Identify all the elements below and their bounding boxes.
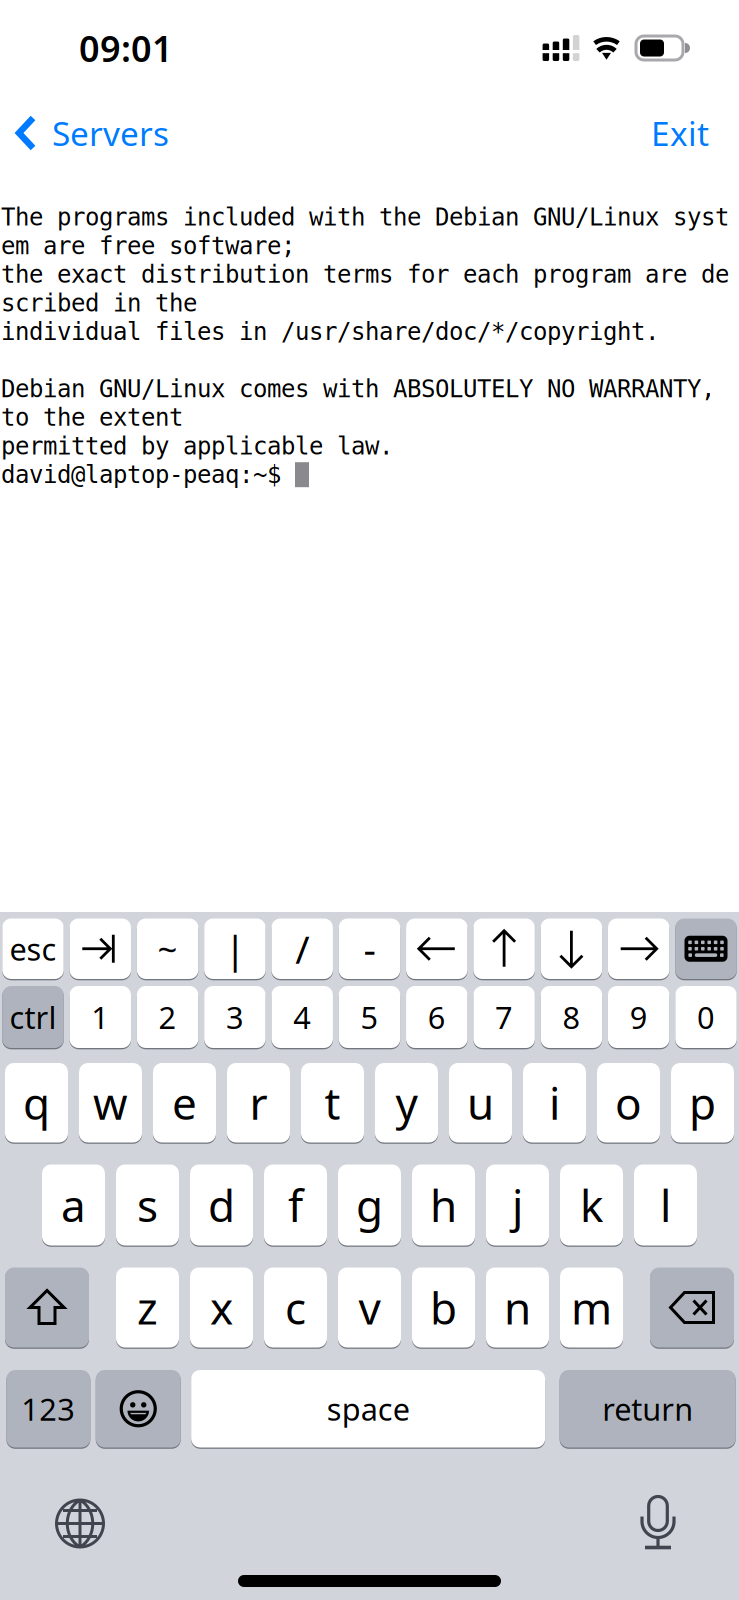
button[interactable]: Dictation	[612, 1487, 704, 1559]
button[interactable]: 9	[608, 985, 669, 1049]
button[interactable]: t	[301, 1062, 364, 1144]
staticText: scribed in the	[1, 289, 197, 317]
staticText: y	[395, 1073, 417, 1132]
button[interactable]: 6	[406, 985, 468, 1049]
staticText: c	[285, 1278, 306, 1337]
button[interactable]: s	[116, 1163, 179, 1247]
staticText: h	[430, 1176, 457, 1234]
button[interactable]: Left arrow	[406, 917, 468, 980]
staticText: b	[430, 1278, 457, 1337]
button[interactable]: Delete	[650, 1266, 734, 1349]
button[interactable]: x	[190, 1266, 253, 1349]
button[interactable]: 5	[339, 985, 400, 1049]
button[interactable]: 4	[271, 985, 333, 1049]
staticText: g	[356, 1176, 383, 1234]
button[interactable]: |	[204, 917, 266, 980]
button[interactable]: Shift	[5, 1266, 89, 1349]
staticText: p	[689, 1073, 716, 1132]
button[interactable]: n	[486, 1266, 549, 1349]
button[interactable]: /	[271, 917, 333, 980]
staticText: v	[358, 1278, 380, 1337]
button[interactable]: k	[560, 1163, 623, 1247]
button[interactable]: Next keyboard	[34, 1487, 126, 1559]
staticText: l	[660, 1176, 671, 1234]
staticText: ctrl	[9, 997, 56, 1037]
staticText: david@laptop-peaq:~$	[1, 461, 295, 488]
staticText: 1	[91, 997, 109, 1037]
button[interactable]: o	[597, 1062, 660, 1144]
staticText: 6	[428, 997, 446, 1037]
button[interactable]: c	[264, 1266, 327, 1349]
button[interactable]: Hide keyboard	[675, 917, 737, 980]
staticText: permitted by applicable law.	[1, 432, 393, 460]
button[interactable]: 7	[473, 985, 535, 1049]
button[interactable]: u	[449, 1062, 512, 1144]
staticText: return	[602, 1388, 693, 1429]
button[interactable]: 1	[69, 985, 131, 1049]
button[interactable]: h	[412, 1163, 475, 1247]
staticText: 4	[293, 997, 311, 1037]
staticText: j	[512, 1176, 523, 1234]
staticText: 123	[21, 1388, 75, 1429]
staticText: the exact distribution terms for each pr…	[1, 261, 729, 288]
button[interactable]: Down arrow	[541, 917, 602, 980]
button[interactable]: j	[486, 1163, 549, 1247]
button[interactable]: Tab	[69, 917, 131, 980]
staticText: Exit	[651, 111, 709, 155]
staticText: w	[93, 1073, 128, 1132]
button[interactable]: Exit	[621, 96, 739, 170]
staticText: 09:01	[79, 24, 173, 72]
staticText: i	[549, 1073, 560, 1132]
button[interactable]: p	[671, 1062, 734, 1144]
button[interactable]: g	[338, 1163, 401, 1247]
button[interactable]: a	[42, 1163, 105, 1247]
button[interactable]: 0	[675, 985, 737, 1049]
staticText: a	[61, 1176, 86, 1234]
staticText: Servers	[52, 111, 169, 155]
staticText: z	[137, 1278, 158, 1337]
button[interactable]: esc	[2, 917, 64, 980]
button[interactable]: e	[153, 1062, 216, 1144]
button[interactable]: Right arrow	[608, 917, 669, 980]
staticText: n	[504, 1278, 531, 1337]
staticText: Debian GNU/Linux comes with ABSOLUTELY N…	[1, 375, 715, 402]
button[interactable]: Up arrow	[473, 917, 535, 980]
button[interactable]: 2	[137, 985, 198, 1049]
staticText: 7	[495, 997, 513, 1037]
staticText: ~	[158, 926, 178, 972]
button[interactable]: w	[79, 1062, 142, 1144]
button[interactable]: return	[560, 1369, 736, 1449]
button[interactable]: v	[338, 1266, 401, 1349]
button[interactable]: q	[5, 1062, 68, 1144]
staticText: individual files in /usr/share/doc/*/cop…	[1, 318, 659, 345]
staticText: 9	[630, 997, 648, 1037]
staticText: 8	[562, 997, 580, 1037]
staticText: /	[295, 923, 309, 974]
staticText: e	[172, 1073, 197, 1132]
button[interactable]: -	[339, 917, 400, 980]
button[interactable]: 123	[6, 1369, 90, 1449]
staticText: u	[467, 1073, 494, 1132]
button[interactable]: ctrl	[2, 985, 64, 1049]
button[interactable]: d	[190, 1163, 253, 1247]
button[interactable]: f	[264, 1163, 327, 1247]
button[interactable]: m	[560, 1266, 623, 1349]
staticText: space	[327, 1388, 410, 1429]
staticText: em are free software;	[1, 232, 295, 259]
button[interactable]: Emoji	[96, 1369, 181, 1449]
button[interactable]: 3	[204, 985, 266, 1049]
button[interactable]: ~	[137, 917, 198, 980]
button[interactable]: space	[191, 1369, 545, 1449]
button[interactable]: z	[116, 1266, 179, 1349]
staticText: |	[224, 923, 245, 974]
button[interactable]: i	[523, 1062, 586, 1144]
button[interactable]: y	[375, 1062, 438, 1144]
button[interactable]: Servers	[0, 96, 185, 170]
staticText: 2	[159, 997, 177, 1037]
staticText: m	[571, 1278, 612, 1337]
button[interactable]: r	[227, 1062, 290, 1144]
staticText: f	[288, 1176, 303, 1234]
button[interactable]: b	[412, 1266, 475, 1349]
button[interactable]: l	[634, 1163, 697, 1247]
button[interactable]: 8	[541, 985, 602, 1049]
